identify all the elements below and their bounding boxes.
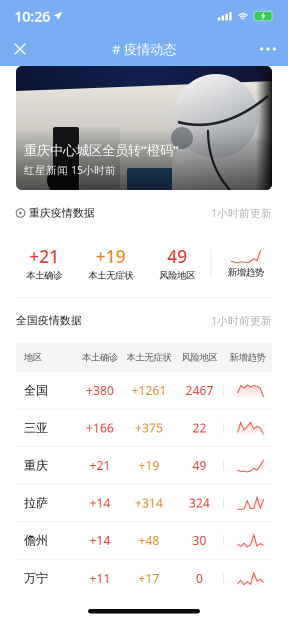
staticText: 全国疫情数据 xyxy=(16,314,82,327)
staticText: +21 xyxy=(29,245,59,268)
staticText: 万宁 xyxy=(24,571,48,586)
staticText: 拉萨 xyxy=(24,495,48,510)
staticText: 10:26 xyxy=(14,6,50,26)
button[interactable]: 三亚 xyxy=(16,409,272,447)
staticText: +14 xyxy=(89,495,110,511)
staticText: 22 xyxy=(192,420,206,436)
staticText: 地区 xyxy=(24,352,42,363)
button[interactable]: 全国 xyxy=(16,372,272,409)
staticText: 风险地区 xyxy=(181,352,217,363)
staticText: +380 xyxy=(86,382,114,398)
staticText: 本土无症状 xyxy=(88,270,133,281)
staticText: 49 xyxy=(192,457,206,473)
staticText: 风险地区 xyxy=(159,270,195,281)
button[interactable]: 儋州 xyxy=(16,522,272,559)
staticText: 新增趋势 xyxy=(229,352,265,363)
staticText: 30 xyxy=(192,532,206,548)
staticText: +19 xyxy=(96,245,126,268)
staticText: 全国 xyxy=(24,383,48,398)
staticText: +14 xyxy=(89,532,110,548)
staticText: +19 xyxy=(138,457,159,473)
staticText: 49 xyxy=(167,245,187,268)
staticText: +11 xyxy=(89,570,110,586)
staticText: 重庆中心城区全员转“橙码” xyxy=(24,141,179,159)
button[interactable]: Close xyxy=(0,32,40,66)
staticText: 本土确诊 xyxy=(26,270,62,281)
staticText: +314 xyxy=(135,495,163,511)
button[interactable]: 重庆中心城区全员转“橙码” xyxy=(16,66,272,190)
staticText: 本土确诊 xyxy=(82,352,118,363)
staticText: 儋州 xyxy=(24,533,48,548)
staticText: 2467 xyxy=(185,382,213,398)
button[interactable]: 万宁 xyxy=(16,559,272,597)
button[interactable]: 拉萨 xyxy=(16,484,272,522)
staticText: 三亚 xyxy=(24,420,48,435)
staticText: # 疫情动态 xyxy=(112,40,176,58)
staticText: +48 xyxy=(138,532,159,548)
staticText: 本土无症状 xyxy=(126,352,171,363)
staticText: +17 xyxy=(138,570,159,586)
staticText: +1261 xyxy=(131,382,166,398)
staticText: 重庆 xyxy=(24,458,48,473)
button[interactable]: 重庆 xyxy=(16,447,272,484)
staticText: 新增趋势 xyxy=(228,267,264,278)
staticText: 1小时前更新 xyxy=(211,206,272,220)
staticText: 324 xyxy=(189,495,210,511)
staticText: 红星新闻 15小时前 xyxy=(24,163,116,177)
staticText: 1小时前更新 xyxy=(211,313,272,328)
staticText: +166 xyxy=(86,420,114,436)
button[interactable]: More xyxy=(248,32,288,66)
staticText: 0 xyxy=(196,570,203,586)
staticText: 重庆疫情数据 xyxy=(29,206,95,219)
staticText: +21 xyxy=(89,457,110,473)
staticText: +375 xyxy=(135,420,163,436)
